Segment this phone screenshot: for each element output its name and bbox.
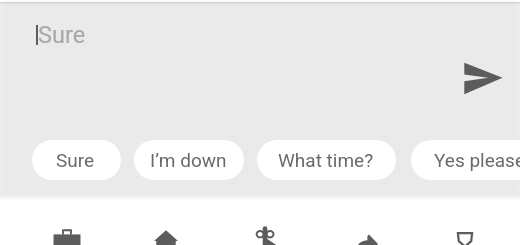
button[interactable]: Yes please: [411, 140, 520, 180]
button[interactable]: Work: [43, 210, 91, 245]
button[interactable]: Sure: [32, 140, 121, 180]
staticText: What time?: [278, 149, 374, 171]
button[interactable]: What time?: [257, 140, 396, 180]
staticText: Yes please: [434, 149, 520, 171]
button[interactable]: Cut: [241, 210, 289, 245]
button[interactable]: I’m down: [134, 140, 244, 180]
staticText: Sure: [56, 149, 95, 171]
button[interactable]: Share: [343, 210, 391, 245]
staticText: I’m down: [150, 149, 227, 171]
button[interactable]: Send: [462, 58, 506, 98]
button[interactable]: Security: [441, 210, 489, 245]
staticText: Sure: [38, 21, 86, 49]
button[interactable]: Home: [142, 210, 190, 245]
